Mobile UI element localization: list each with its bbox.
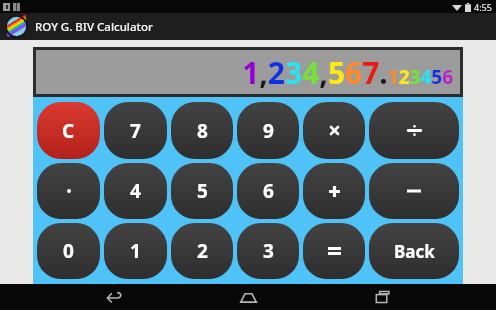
staticText: 4:55	[474, 1, 492, 13]
staticText: 3	[263, 238, 274, 264]
button[interactable]: Home	[227, 285, 269, 309]
button[interactable]: 6	[237, 163, 299, 219]
button[interactable]	[37, 163, 100, 219]
staticText: 1,234,567.123456	[242, 52, 453, 93]
button[interactable]: Divide	[369, 102, 459, 159]
button[interactable]: 5	[171, 163, 233, 219]
staticText: 6	[263, 178, 274, 204]
button[interactable]: C	[37, 102, 100, 159]
button[interactable]: 2	[171, 223, 233, 279]
button[interactable]: 1	[104, 223, 167, 279]
staticText: 2	[197, 238, 208, 264]
button[interactable]: Recent apps	[362, 285, 404, 309]
button[interactable]: Add	[303, 163, 365, 219]
staticText: Back	[394, 240, 435, 263]
staticText: 7	[130, 118, 141, 144]
button[interactable]: Back	[93, 285, 135, 309]
button[interactable]: 7	[104, 102, 167, 159]
staticText: 1	[130, 238, 141, 264]
button[interactable]: 9	[237, 102, 299, 159]
button[interactable]: Equals	[303, 223, 365, 279]
staticText: 9	[263, 118, 274, 144]
button[interactable]: 8	[171, 102, 233, 159]
button[interactable]: Multiply	[303, 102, 365, 159]
staticText: ROY G. BIV Calculator	[35, 19, 153, 35]
staticText: 0	[63, 238, 74, 264]
staticText: C	[62, 118, 75, 144]
button[interactable]: Subtract	[369, 163, 459, 219]
staticText: 8	[197, 118, 208, 144]
staticText: 4	[130, 178, 141, 204]
button[interactable]: 0	[37, 223, 100, 279]
button[interactable]: Back	[369, 223, 459, 279]
button[interactable]: 4	[104, 163, 167, 219]
staticText: 5	[197, 178, 208, 204]
button[interactable]: 3	[237, 223, 299, 279]
